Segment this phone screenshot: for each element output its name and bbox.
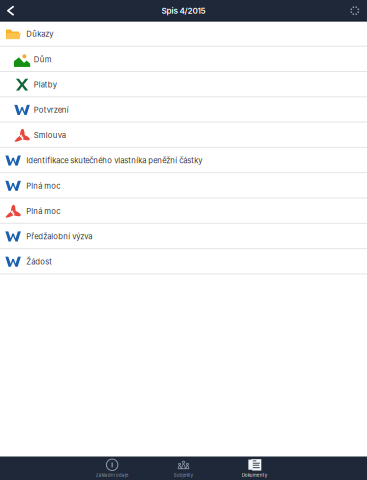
staticText: Plná moc [26,206,60,216]
button[interactable]: Důkazy [0,21,367,47]
button[interactable]: Dokumenty [219,456,290,480]
button[interactable]: Žádost [0,249,367,274]
button[interactable]: Potvrzení [0,97,367,123]
button[interactable]: Dům [0,47,367,72]
staticText: Subjekty [173,472,193,478]
button[interactable]: Options [345,0,367,21]
button[interactable]: Identifikace skutečného vlastníka peněžn… [0,148,367,173]
staticText: Spis 4/2015 [161,6,205,16]
staticText: Žádost [26,257,52,266]
staticText: Platby [34,80,57,89]
button[interactable]: Základní údaje [76,456,148,480]
button[interactable]: Platby [0,72,367,97]
staticText: Dům [34,55,52,64]
staticText: Předžalobní výzva [26,232,92,241]
staticText: Potvrzení [34,105,69,115]
staticText: Plná moc [26,181,60,190]
button[interactable]: Back [0,0,21,21]
button[interactable]: Plná moc [0,198,367,224]
staticText: Důkazy [26,29,53,39]
staticText: Dokumenty [242,472,268,478]
button[interactable]: Subjekty [148,456,219,480]
staticText: Základní údaje [96,472,129,478]
staticText: Identifikace skutečného vlastníka peněžn… [26,156,202,165]
button[interactable]: Předžalobní výzva [0,224,367,249]
button[interactable]: Smlouva [0,123,367,148]
button[interactable]: Plná moc [0,173,367,198]
staticText: Smlouva [34,131,66,140]
